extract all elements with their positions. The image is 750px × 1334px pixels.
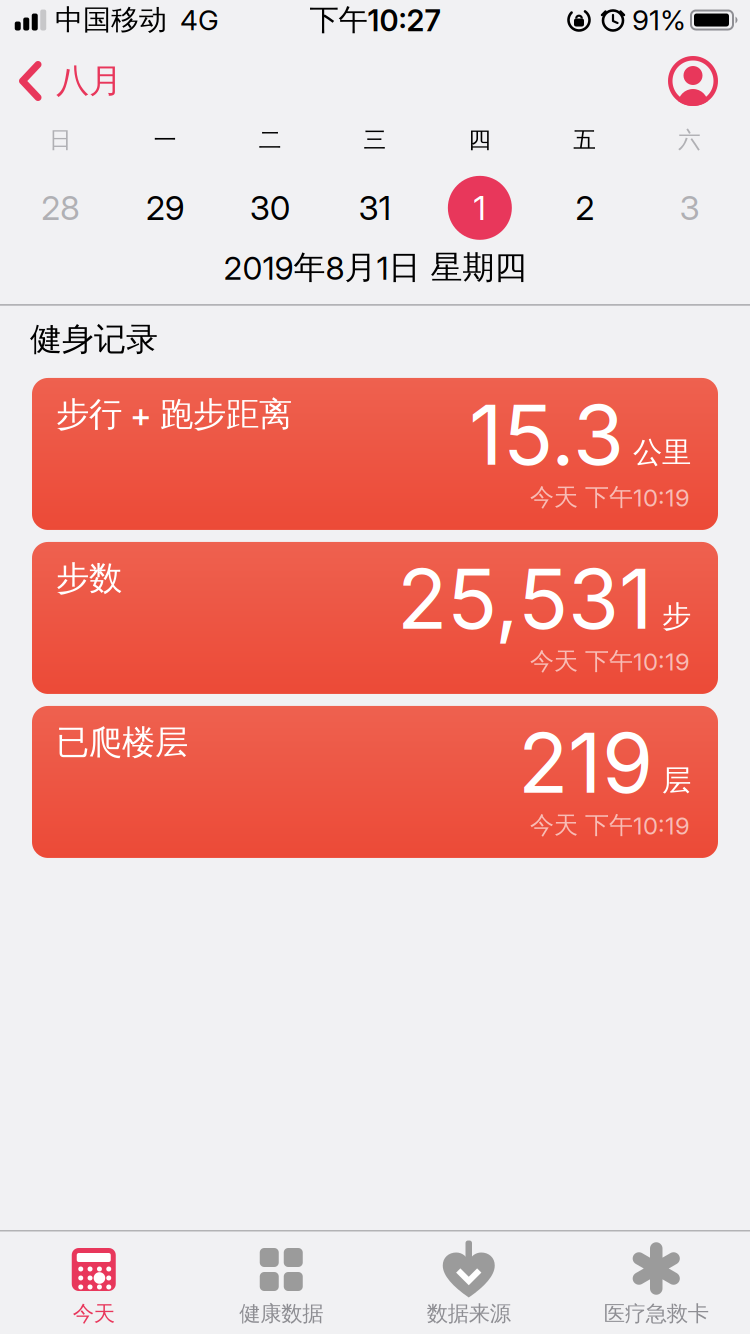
- staticText: 步数: [56, 558, 122, 599]
- button[interactable]: 已爬楼层: [32, 706, 718, 858]
- staticText: 数据来源: [427, 1300, 511, 1327]
- staticText: 1: [473, 188, 486, 227]
- staticText: 28: [41, 188, 80, 227]
- button[interactable]: 1: [427, 168, 532, 248]
- staticText: 2019年8月1日 星期四: [223, 248, 526, 287]
- staticText: 30: [250, 188, 291, 227]
- staticText: 步行 + 跑步距离: [56, 394, 292, 435]
- staticText: 今天: [73, 1300, 115, 1327]
- button[interactable]: 2: [532, 168, 637, 248]
- button[interactable]: 健康数据: [187, 1243, 375, 1327]
- staticText: 步: [662, 598, 691, 634]
- staticText: 29: [146, 188, 185, 227]
- button[interactable]: 30: [218, 168, 322, 248]
- staticText: 健康数据: [239, 1300, 323, 1327]
- staticText: 25,531: [397, 550, 653, 647]
- button[interactable]: 医疗急救卡: [562, 1243, 750, 1327]
- staticText: 六: [678, 126, 701, 154]
- button[interactable]: 八月: [19, 60, 122, 101]
- staticText: 2: [575, 188, 594, 227]
- staticText: 今天 下午10:19: [530, 810, 690, 840]
- staticText: 下午10:27: [309, 2, 440, 38]
- staticText: 健身记录: [30, 320, 158, 359]
- staticText: 五: [573, 126, 596, 154]
- button[interactable]: 数据来源: [375, 1243, 562, 1327]
- button[interactable]: 31: [323, 168, 427, 248]
- staticText: 15.3: [469, 386, 624, 483]
- staticText: 219: [518, 714, 653, 811]
- staticText: 已爬楼层: [56, 722, 188, 763]
- staticText: 91%: [632, 3, 686, 36]
- staticText: 31: [358, 188, 391, 227]
- staticText: 今天 下午10:19: [530, 482, 690, 512]
- staticText: 日: [49, 126, 72, 154]
- button[interactable]: 步行 + 跑步距离: [32, 378, 718, 530]
- button[interactable]: 步数: [32, 542, 718, 694]
- staticText: 一: [154, 126, 177, 154]
- button[interactable]: 29: [113, 168, 218, 248]
- staticText: 层: [662, 762, 691, 798]
- staticText: 三: [363, 126, 386, 154]
- staticText: 公里: [633, 434, 691, 470]
- staticText: 二: [259, 126, 282, 154]
- button[interactable]: 28: [8, 168, 113, 248]
- staticText: 今天 下午10:19: [530, 646, 690, 676]
- staticText: 四: [468, 126, 491, 154]
- button[interactable]: [668, 56, 718, 106]
- staticText: 3: [679, 188, 699, 227]
- button[interactable]: 3: [637, 168, 742, 248]
- staticText: 医疗急救卡: [604, 1300, 709, 1327]
- staticText: 八月: [56, 60, 122, 101]
- staticText: 4G: [180, 3, 219, 36]
- button[interactable]: 今天: [0, 1243, 187, 1327]
- staticText: 中国移动: [55, 3, 167, 37]
